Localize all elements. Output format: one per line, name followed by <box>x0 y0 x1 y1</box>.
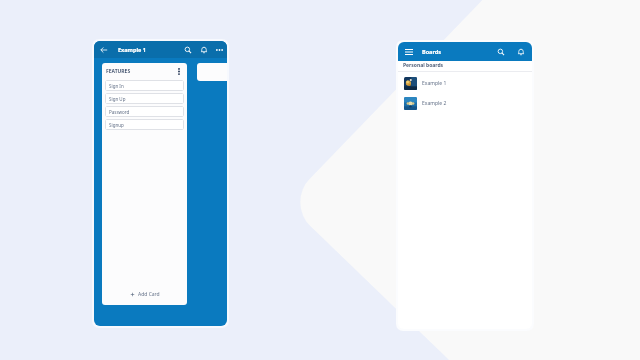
staticText: Sign In <box>109 83 124 89</box>
button[interactable]: Notifications <box>515 46 526 57</box>
button[interactable]: Back <box>98 44 109 55</box>
staticText: Example 1 <box>422 80 447 87</box>
button[interactable]: Search <box>182 44 193 55</box>
staticText: Password <box>109 109 130 115</box>
staticText: Personal boards <box>403 62 444 69</box>
staticText: Signup <box>109 122 124 128</box>
button[interactable]: Signup <box>105 119 184 130</box>
staticText: Example 1 <box>118 46 146 53</box>
button[interactable]: Example 2 <box>398 93 532 113</box>
button[interactable]: Sign Up <box>105 93 184 104</box>
button[interactable]: Add Card <box>102 283 187 305</box>
staticText: FEATURES <box>106 68 131 75</box>
button[interactable]: Example 1 <box>398 73 532 93</box>
staticText: Boards <box>422 48 441 55</box>
staticText: Example 2 <box>422 100 447 107</box>
button[interactable]: List actions <box>175 67 183 75</box>
button[interactable]: More options <box>214 44 225 55</box>
button[interactable]: Sign In <box>105 80 184 91</box>
staticText: Sign Up <box>109 96 126 102</box>
button[interactable]: Notifications <box>198 44 209 55</box>
staticText: Add Card <box>138 291 160 298</box>
button[interactable]: Password <box>105 106 184 117</box>
button[interactable]: Menu <box>403 46 414 57</box>
button[interactable]: Search <box>495 46 506 57</box>
